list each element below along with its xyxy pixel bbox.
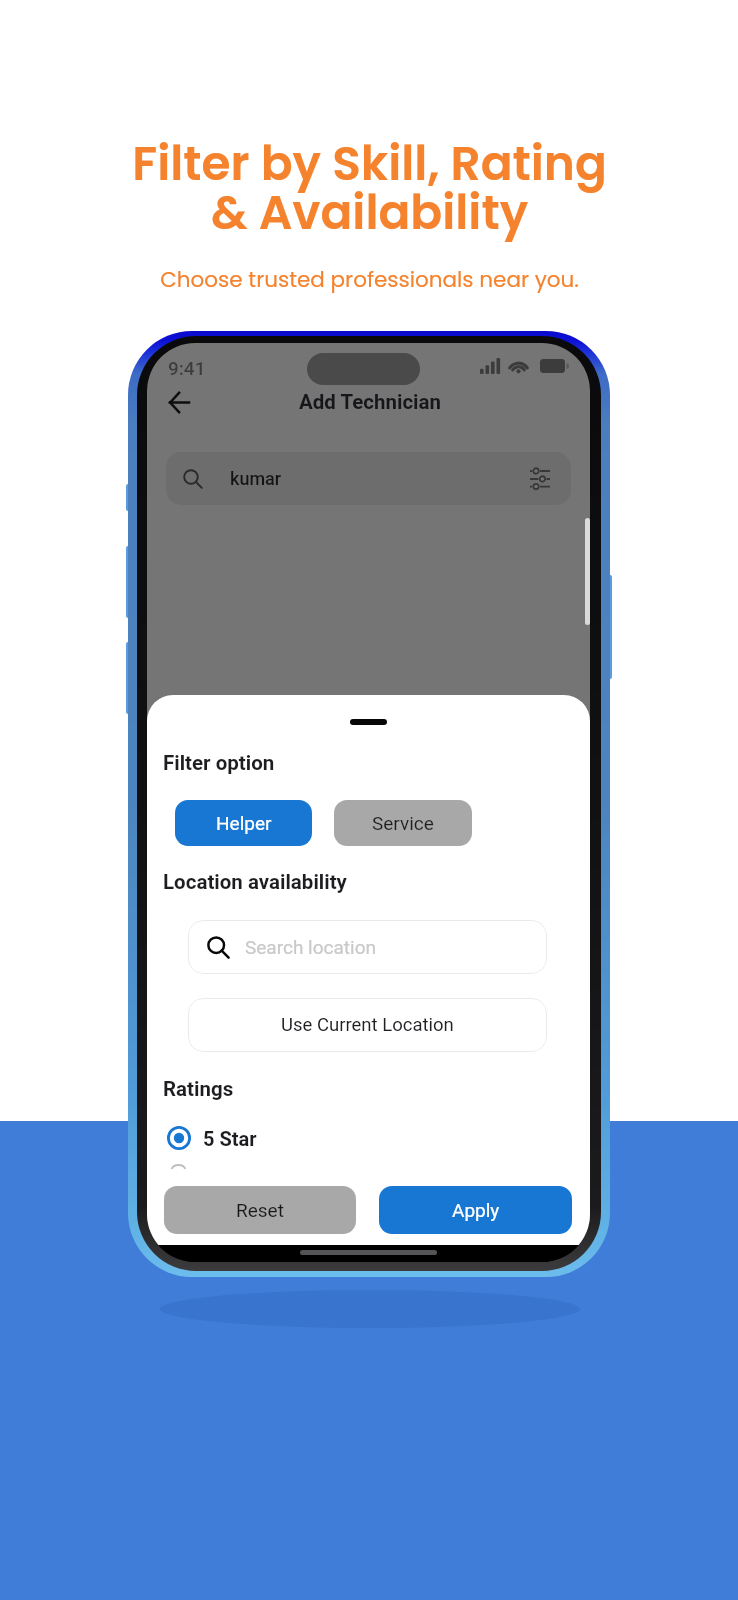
- button[interactable]: Use Current Location: [188, 998, 547, 1052]
- staticText: Filter by Skill, Rating & Availability: [132, 131, 607, 245]
- staticText: kumar: [230, 468, 282, 489]
- staticText: Location availability: [163, 870, 347, 894]
- staticText: Ratings: [163, 1077, 234, 1101]
- staticText: Helper: [216, 812, 272, 834]
- button[interactable]: Apply: [379, 1186, 572, 1234]
- staticText: Add Technician: [299, 390, 442, 414]
- button[interactable]: Helper: [175, 800, 312, 846]
- button[interactable]: Search location: [188, 920, 547, 974]
- button[interactable]: 5 Star: [164, 1120, 314, 1156]
- button[interactable]: Reset: [164, 1186, 356, 1234]
- button[interactable]: Service: [334, 800, 472, 846]
- button[interactable]: Back: [160, 383, 198, 421]
- staticText: Filter option: [163, 751, 275, 775]
- staticText: Search location: [245, 936, 376, 958]
- staticText: Reset: [236, 1199, 284, 1221]
- button[interactable]: kumar: [166, 452, 571, 505]
- staticText: 5 Star: [203, 1127, 257, 1150]
- staticText: Choose trusted professionals near you.: [160, 264, 579, 294]
- staticText: 9:41: [168, 357, 206, 379]
- staticText: Apply: [452, 1199, 500, 1221]
- staticText: Use Current Location: [281, 1014, 454, 1036]
- staticText: Service: [372, 812, 434, 834]
